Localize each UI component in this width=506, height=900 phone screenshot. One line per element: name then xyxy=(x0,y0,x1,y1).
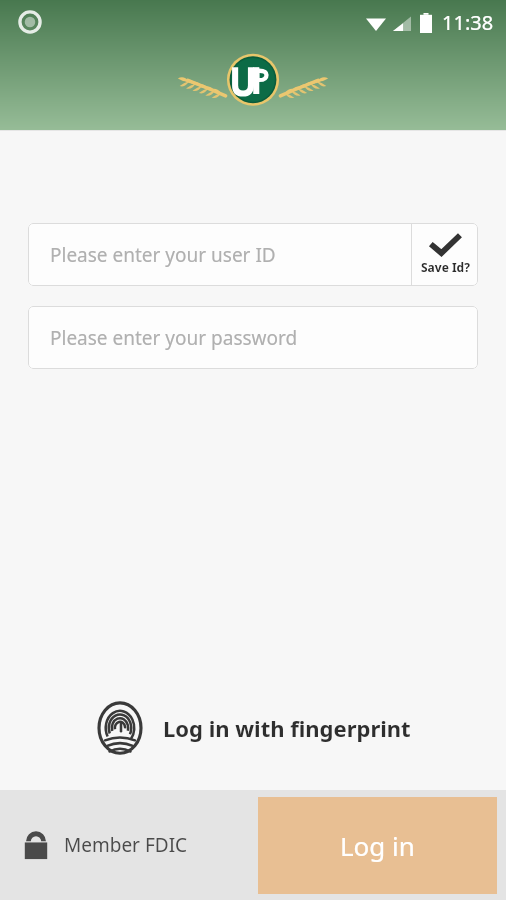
button[interactable]: Please enter your password xyxy=(28,306,478,369)
button[interactable]: Save Id xyxy=(412,223,478,286)
staticText: Member FDIC xyxy=(64,832,188,858)
staticText: Log in with fingerprint xyxy=(163,713,411,743)
staticText: Log in xyxy=(340,828,415,863)
button[interactable]: Log in xyxy=(258,797,497,894)
staticText: Save Id? xyxy=(421,259,470,275)
button[interactable]: Member FDIC xyxy=(22,829,188,861)
staticText: Please enter your password xyxy=(50,325,298,351)
button[interactable]: Please enter your user ID xyxy=(28,223,411,286)
staticText: Please enter your user ID xyxy=(50,242,276,268)
button[interactable]: Log in with fingerprint xyxy=(81,692,425,764)
staticText: 11:38 xyxy=(442,9,494,36)
